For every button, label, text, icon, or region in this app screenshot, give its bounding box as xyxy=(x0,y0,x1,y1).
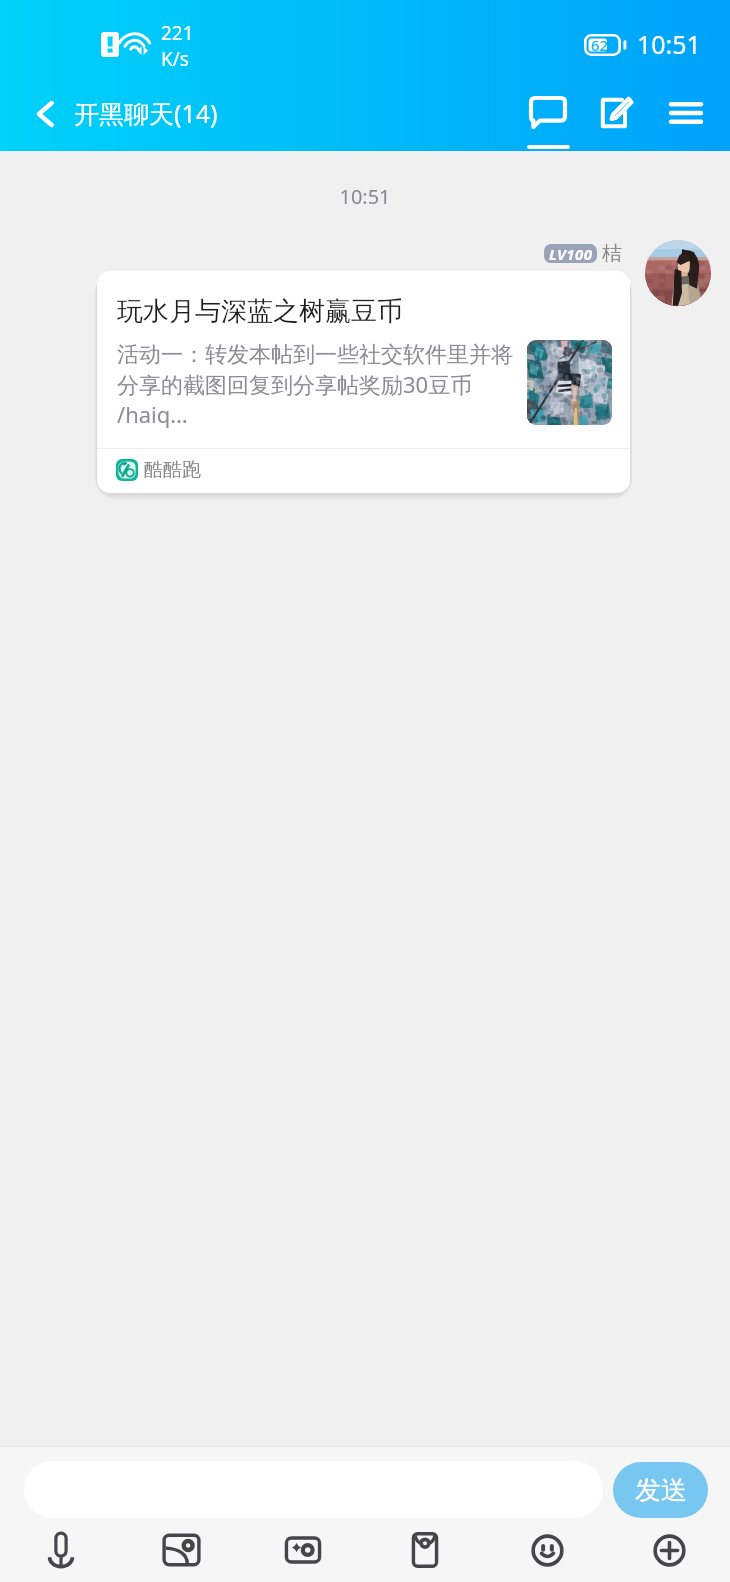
button[interactable]: 发送 xyxy=(613,1462,708,1518)
button[interactable]: Avatar xyxy=(645,240,711,306)
staticText: 10:51 xyxy=(0,183,730,210)
staticText: 开黑聊天(14) xyxy=(74,96,218,130)
staticText: 桔 xyxy=(602,241,622,266)
button[interactable]: Chat xyxy=(514,85,582,151)
button[interactable]: More xyxy=(608,1518,730,1582)
staticText: 发送 xyxy=(635,1474,687,1507)
staticText: 10:51 xyxy=(637,27,701,61)
button[interactable]: Menu xyxy=(654,85,718,141)
button[interactable]: Sticker xyxy=(242,1518,364,1582)
button[interactable]: Red packet xyxy=(364,1518,486,1582)
button[interactable]: Emoji xyxy=(486,1518,608,1582)
staticText: 玩水月与深蓝之树赢豆币 xyxy=(117,295,403,328)
staticText: LV100 xyxy=(549,244,593,263)
staticText: 221 xyxy=(161,20,194,46)
staticText: 活动一：转发本帖到一些社交软件里并将 分享的截图回复到分享帖奖励30豆币 /ha… xyxy=(117,341,513,429)
button[interactable]: 玩水月与深蓝之树赢豆币 xyxy=(97,271,630,493)
staticText: 62 xyxy=(591,35,609,55)
staticText: K/s xyxy=(161,46,189,72)
button[interactable]: Back xyxy=(21,84,69,144)
button[interactable]: Photo xyxy=(121,1518,242,1582)
staticText: 酷酷跑 xyxy=(144,458,201,482)
button[interactable]: Voice message xyxy=(0,1518,121,1582)
button[interactable]: Compose xyxy=(584,85,648,141)
